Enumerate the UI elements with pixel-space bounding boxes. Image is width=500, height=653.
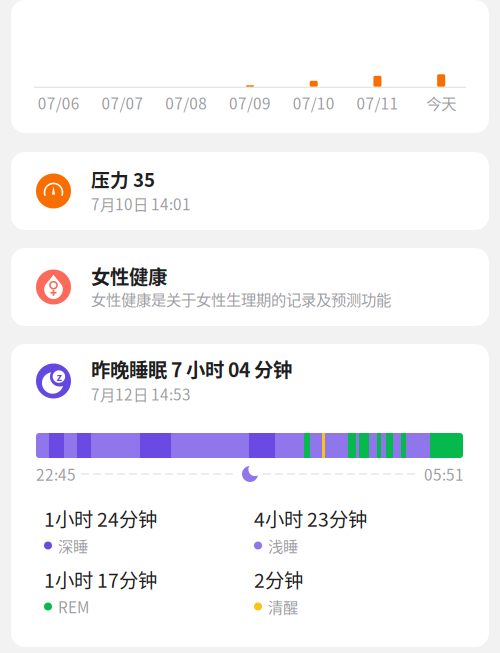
staticText: 压力 35: [91, 167, 155, 190]
staticText: z: [56, 369, 61, 384]
staticText: 7月12日 14:53: [91, 383, 191, 405]
button[interactable]: 女性健康: [11, 248, 489, 326]
staticText: 07/09: [229, 92, 271, 114]
staticText: 1小时 17分钟: [44, 565, 157, 593]
staticText: 07/07: [102, 92, 144, 114]
staticText: 22:45: [36, 464, 76, 484]
button[interactable]: 07/06: [11, 0, 489, 133]
staticText: 浅睡: [268, 534, 298, 557]
staticText: 昨晚睡眠 7 小时 04 分钟: [91, 357, 292, 381]
staticText: 2分钟: [254, 565, 303, 593]
staticText: 7月10日 14:01: [91, 192, 191, 215]
staticText: 07/06: [38, 92, 80, 114]
staticText: 05:51: [424, 464, 464, 484]
staticText: 07/08: [165, 92, 207, 114]
button[interactable]: 压力 35: [11, 152, 489, 230]
button[interactable]: z: [11, 344, 489, 647]
staticText: 深睡: [58, 534, 88, 557]
staticText: 1小时 24分钟: [44, 504, 157, 532]
staticText: 07/10: [293, 92, 335, 114]
staticText: 女性健康: [91, 264, 167, 288]
staticText: 07/11: [356, 92, 398, 114]
staticText: 今天: [426, 92, 456, 114]
staticText: 清醒: [268, 595, 298, 618]
staticText: 女性健康是关于女性生理期的记录及预测功能: [91, 288, 391, 310]
staticText: REM: [58, 595, 89, 618]
staticText: 4小时 23分钟: [254, 504, 367, 532]
